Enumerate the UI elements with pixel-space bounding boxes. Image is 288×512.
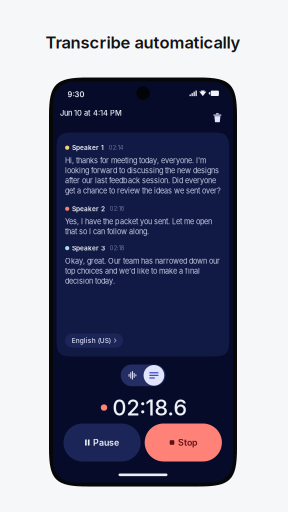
staticText: Speaker 3	[72, 244, 105, 252]
button[interactable]: Transcript	[144, 365, 164, 386]
staticText: Stop	[178, 437, 197, 448]
button[interactable]: Pause	[63, 423, 141, 461]
staticText: 9:30	[67, 90, 84, 99]
button[interactable]: English (US)	[65, 333, 123, 347]
staticText: 02:16	[110, 205, 124, 212]
staticText: 02:18	[110, 245, 124, 251]
button[interactable]: Stop	[145, 423, 222, 461]
staticText: Pause	[93, 437, 119, 448]
staticText: Transcribe automatically	[45, 32, 240, 52]
button[interactable]: Delete recording	[210, 110, 224, 125]
button[interactable]: Audio waveform	[121, 364, 144, 386]
staticText: Hi, thanks for meeting today, everyone. …	[65, 156, 221, 195]
staticText: Okay, great. Our team has narrowed down …	[65, 256, 220, 285]
staticText: Jun 10 at 4:14 PM	[60, 108, 122, 117]
staticText: 02:14	[109, 144, 124, 151]
staticText: English (US)	[72, 336, 111, 344]
staticText: Yes, I have the packet you sent. Let me …	[65, 217, 212, 236]
staticText: 02:18.6	[112, 394, 187, 421]
staticText: Speaker 1	[72, 144, 104, 152]
staticText: Speaker 2	[72, 205, 105, 213]
